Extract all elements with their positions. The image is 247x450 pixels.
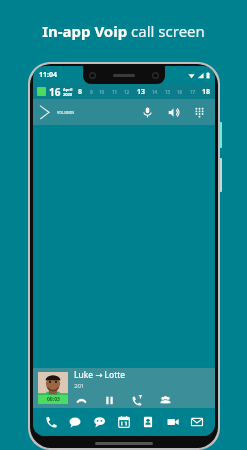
staticText: 17: [190, 89, 196, 95]
button[interactable]: Conference: [158, 393, 172, 407]
button[interactable]: 00:03: [38, 372, 68, 404]
staticText: 16: [49, 85, 61, 99]
staticText: In-app Voip call screen: [42, 21, 205, 41]
button[interactable]: Video: [162, 411, 184, 433]
staticText: 15: [165, 89, 171, 95]
staticText: 14: [152, 89, 158, 95]
staticText: 2020: [63, 92, 73, 97]
button[interactable]: Hang up: [74, 393, 88, 407]
button[interactable]: Hold: [102, 393, 116, 407]
button[interactable]: Chat: [64, 411, 86, 433]
staticText: 18: [202, 87, 211, 97]
staticText: 201: [74, 382, 85, 390]
staticText: 11:04: [39, 70, 57, 80]
button[interactable]: Calls: [40, 411, 62, 433]
staticText: 10: [99, 89, 105, 95]
staticText: VOLUMIN: [57, 110, 75, 115]
button[interactable]: Transfer call: [130, 393, 144, 407]
button[interactable]: Dialpad: [189, 102, 209, 122]
button[interactable]: Calendar: [113, 411, 135, 433]
staticText: 9: [90, 89, 93, 95]
button[interactable]: Group chat: [89, 411, 111, 433]
staticText: 8: [78, 87, 83, 97]
button[interactable]: Speaker: [163, 102, 183, 122]
staticText: 00:03: [47, 396, 60, 403]
button[interactable]: Microphone: [137, 102, 157, 122]
button[interactable]: Mail: [186, 411, 208, 433]
staticText: 16: [177, 89, 183, 95]
staticText: 12: [124, 89, 130, 95]
staticText: 11: [112, 89, 118, 95]
staticText: 13: [137, 87, 146, 97]
button[interactable]: Contacts: [137, 411, 159, 433]
staticText: Luke → Lotte: [74, 369, 126, 381]
staticText: April: [63, 87, 73, 92]
